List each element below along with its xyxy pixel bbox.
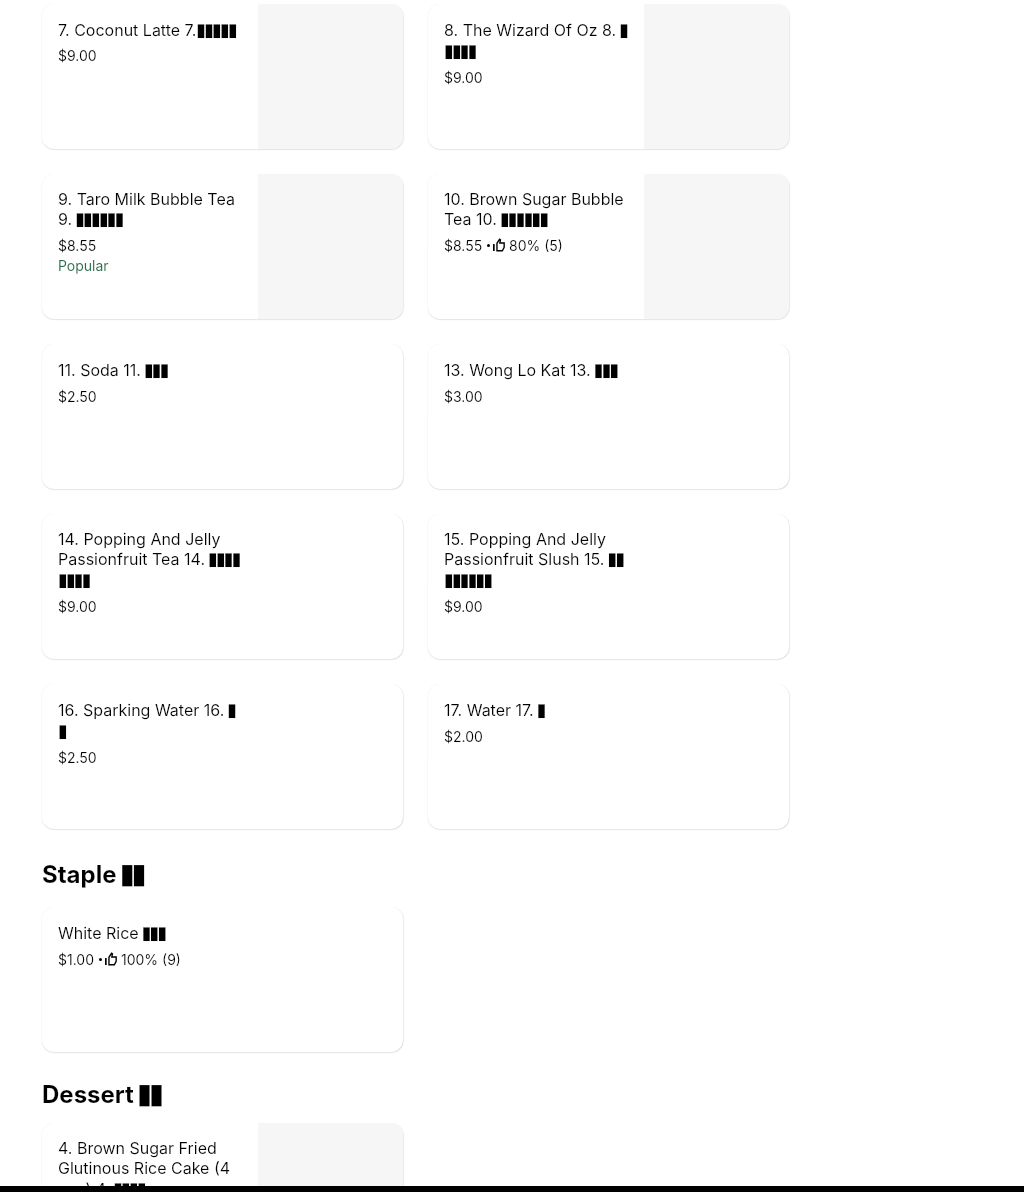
staticText: $3.00: [444, 388, 483, 405]
staticText: 11. Soda 11. ▮▮▮: [58, 359, 168, 381]
staticText: 15. Popping And Jelly Passionfruit Slush…: [444, 529, 624, 591]
staticText: 4. Brown Sugar Fried Glutinous Rice Cake…: [58, 1138, 231, 1192]
staticText: 7. Coconut Latte 7.▮▮▮▮▮: [58, 19, 236, 40]
staticText: 100% (9): [121, 951, 181, 968]
staticText: 80% (5): [509, 237, 563, 254]
staticText: $2.00: [444, 728, 483, 745]
button[interactable]: 10. Brown Sugar Bubble Tea 10. ▮▮▮▮▮▮: [428, 174, 789, 319]
staticText: $9.00: [58, 598, 97, 615]
button[interactable]: 7. Coconut Latte 7.▮▮▮▮▮: [42, 4, 403, 149]
staticText: Dessert ▮▮: [42, 1076, 161, 1110]
staticText: $9.00: [58, 47, 97, 64]
staticText: 17. Water 17. ▮: [444, 699, 545, 721]
button[interactable]: 8. The Wizard Of Oz 8. ▮ ▮▮▮▮: [428, 4, 789, 149]
button[interactable]: 17. Water 17. ▮: [428, 684, 789, 829]
button[interactable]: 15. Popping And Jelly Passionfruit Slush…: [428, 514, 789, 659]
button[interactable]: 4. Brown Sugar Fried Glutinous Rice Cake…: [42, 1123, 403, 1192]
button[interactable]: 11. Soda 11. ▮▮▮: [42, 344, 403, 489]
staticText: $1.00: [58, 951, 95, 968]
staticText: Staple ▮▮: [42, 856, 144, 890]
staticText: 10. Brown Sugar Bubble Tea 10. ▮▮▮▮▮▮: [444, 189, 624, 230]
staticText: $9.00: [444, 598, 483, 615]
staticText: $2.50: [58, 749, 97, 766]
button[interactable]: White Rice ▮▮▮: [42, 907, 403, 1052]
staticText: 9. Taro Milk Bubble Tea 9. ▮▮▮▮▮▮: [58, 189, 235, 230]
button[interactable]: 9. Taro Milk Bubble Tea 9. ▮▮▮▮▮▮: [42, 174, 403, 319]
button[interactable]: 16. Sparking Water 16. ▮ ▮: [42, 684, 403, 829]
button[interactable]: 13. Wong Lo Kat 13. ▮▮▮: [428, 344, 789, 489]
staticText: Popular: [58, 257, 109, 274]
staticText: White Rice ▮▮▮: [58, 922, 166, 944]
staticText: $8.55: [444, 237, 483, 254]
staticText: 16. Sparking Water 16. ▮ ▮: [58, 699, 236, 742]
staticText: $9.00: [444, 69, 483, 86]
staticText: 14. Popping And Jelly Passionfruit Tea 1…: [58, 529, 240, 591]
staticText: $8.55: [58, 237, 97, 254]
staticText: 13. Wong Lo Kat 13. ▮▮▮: [444, 359, 618, 381]
staticText: 8. The Wizard Of Oz 8. ▮ ▮▮▮▮: [444, 19, 628, 62]
staticText: $2.50: [58, 388, 97, 405]
button[interactable]: 14. Popping And Jelly Passionfruit Tea 1…: [42, 514, 403, 659]
